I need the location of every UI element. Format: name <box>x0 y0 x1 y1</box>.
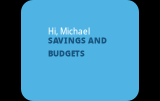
staticText: SAVINGS AND <box>48 35 107 46</box>
staticText: BUDGETS <box>48 48 85 59</box>
button[interactable]: Hi, Michael <box>21 0 139 101</box>
staticText: Hi, Michael <box>48 26 90 37</box>
